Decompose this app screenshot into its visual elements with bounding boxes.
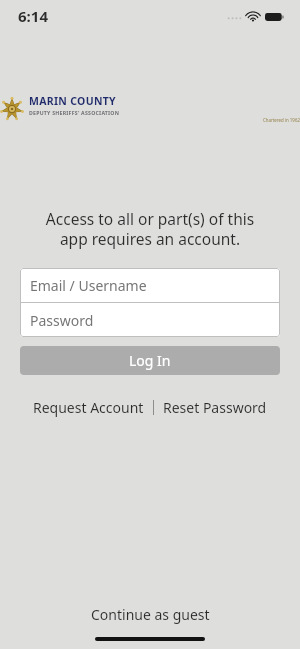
button[interactable]: Email / Username	[20, 268, 280, 302]
button[interactable]: Request Account	[31, 396, 146, 419]
button[interactable]: Continue as guest	[75, 601, 226, 628]
staticText: Password	[30, 311, 94, 330]
button[interactable]: Password	[20, 303, 280, 337]
staticText: Reset Password	[163, 398, 267, 417]
staticText: Log In	[129, 351, 171, 370]
staticText: MARIN COUNTY	[29, 94, 116, 108]
staticText: Chartered in 1962	[263, 117, 300, 123]
staticText: DEPUTY SHERIFFS' ASSOCIATION	[29, 109, 120, 116]
staticText: Continue as guest	[91, 605, 210, 624]
button[interactable]: Reset Password	[161, 396, 269, 419]
staticText: 6:14	[18, 6, 48, 26]
staticText: Request Account	[33, 398, 144, 417]
staticText: Access to all or part(s) of this app req…	[0, 208, 300, 250]
staticText: Email / Username	[30, 276, 147, 295]
button[interactable]: Log In	[20, 346, 280, 375]
